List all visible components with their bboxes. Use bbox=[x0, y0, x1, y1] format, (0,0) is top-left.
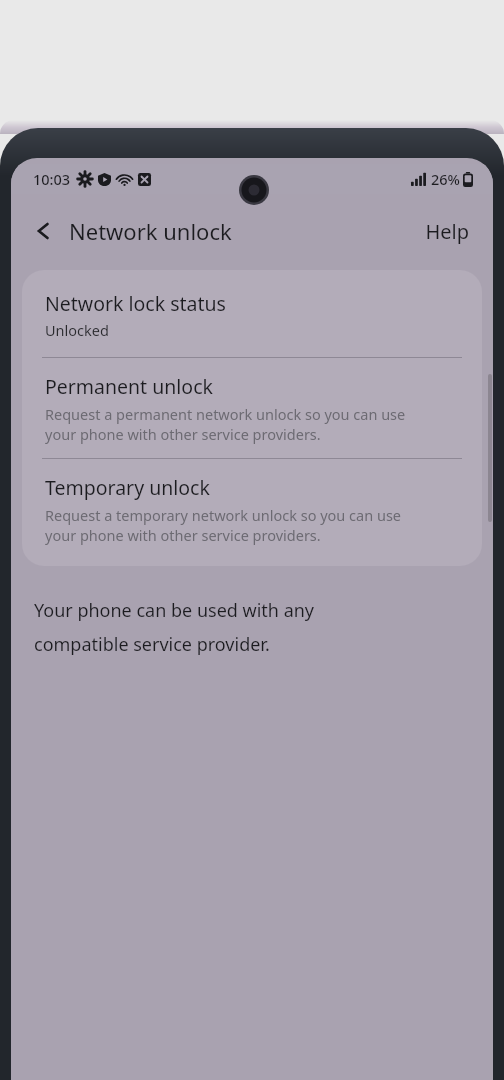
staticText: Help bbox=[425, 218, 469, 245]
button[interactable]: Temporary unlock bbox=[22, 473, 482, 546]
staticText: Permanent unlock bbox=[45, 373, 213, 400]
button[interactable]: Network lock status bbox=[22, 288, 482, 342]
staticText: Unlocked bbox=[45, 320, 109, 340]
button[interactable]: Help bbox=[421, 212, 473, 251]
staticText: Your phone can be used with any bbox=[34, 598, 315, 623]
button[interactable]: Permanent unlock bbox=[22, 372, 482, 445]
staticText: compatible service provider. bbox=[34, 632, 270, 657]
staticText: 10:03 bbox=[33, 169, 71, 189]
staticText: Request a permanent network unlock so yo… bbox=[45, 404, 406, 444]
staticText: Network lock status bbox=[45, 290, 226, 317]
button[interactable]: Back bbox=[25, 212, 63, 250]
staticText: Temporary unlock bbox=[45, 474, 210, 501]
staticText: Network unlock bbox=[69, 216, 232, 246]
staticText: 26% bbox=[431, 169, 460, 189]
staticText: Request a temporary network unlock so yo… bbox=[45, 505, 402, 545]
